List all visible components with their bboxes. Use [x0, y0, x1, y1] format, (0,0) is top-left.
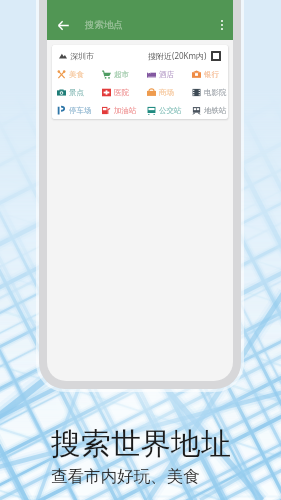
staticText: 加油站	[114, 106, 137, 115]
button[interactable]: 美食	[57, 70, 102, 79]
button[interactable]: 停车场	[57, 106, 102, 115]
staticText: 停车场	[69, 106, 92, 115]
staticText: 搜附近(20Km内)	[148, 50, 207, 61]
button[interactable]: 银行	[192, 70, 228, 79]
staticText: 超市	[114, 70, 129, 79]
staticText: 电影院	[204, 88, 227, 97]
staticText: 公交站	[159, 106, 182, 115]
staticText: 医院	[114, 88, 129, 97]
button[interactable]: 景点	[57, 88, 102, 97]
staticText: 商场	[159, 88, 174, 97]
button[interactable]: 电影院	[192, 88, 228, 97]
button[interactable]: 公交站	[147, 106, 192, 115]
staticText: 地铁站	[204, 106, 227, 115]
button[interactable]: 酒店	[147, 70, 192, 79]
staticText: 景点	[69, 88, 84, 97]
staticText: 美食	[69, 70, 84, 79]
button[interactable]: More options	[212, 15, 232, 35]
staticText: 搜索地点	[85, 19, 123, 31]
button[interactable]: 地铁站	[192, 106, 228, 115]
button[interactable]: 商场	[147, 88, 192, 97]
staticText: 银行	[204, 70, 219, 79]
staticText: 酒店	[159, 70, 174, 79]
button[interactable]: 超市	[102, 70, 147, 79]
button[interactable]: 医院	[102, 88, 147, 97]
button[interactable]: Search nearby toggle	[211, 51, 221, 61]
button[interactable]: Back	[51, 13, 75, 37]
staticText: 深圳市	[70, 51, 94, 61]
staticText: 搜索世界地址	[51, 425, 231, 463]
button[interactable]: 加油站	[102, 106, 147, 115]
staticText: 查看市内好玩、美食	[51, 466, 200, 487]
